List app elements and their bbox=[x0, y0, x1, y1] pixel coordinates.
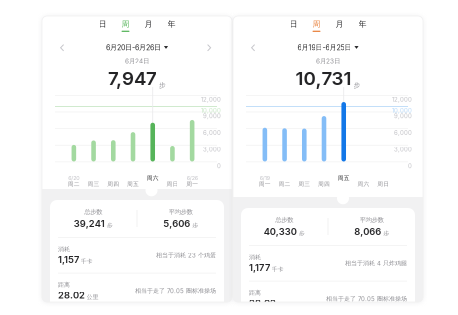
staticText: 周一 bbox=[186, 180, 198, 188]
staticText: 28.02 bbox=[249, 297, 276, 309]
staticText: 千卡 bbox=[80, 258, 92, 265]
staticText: 6,000 bbox=[394, 129, 412, 136]
staticText: 3,000 bbox=[394, 146, 412, 153]
staticText: 日 bbox=[98, 19, 106, 29]
staticText: 相当于消耗 23 个鸡蛋 bbox=[156, 251, 216, 259]
staticText: 距离 bbox=[249, 289, 261, 296]
button[interactable]: 上一周 bbox=[251, 44, 256, 53]
staticText: 平均步数 bbox=[169, 208, 193, 216]
staticText: 6/19 bbox=[260, 175, 270, 181]
staticText: 6月20日-6月26日 bbox=[106, 43, 161, 52]
staticText: 12,000 bbox=[392, 96, 412, 103]
staticText: 40,330 bbox=[264, 226, 297, 237]
staticText: 1,177 bbox=[249, 262, 270, 273]
staticText: 周六 bbox=[357, 180, 369, 188]
staticText: 0 bbox=[217, 162, 221, 170]
staticText: 39,241 bbox=[74, 218, 105, 229]
staticText: 消耗 bbox=[249, 253, 261, 261]
staticText: 6/26 bbox=[187, 175, 198, 181]
staticText: 年 bbox=[358, 19, 366, 29]
staticText: 周 bbox=[312, 19, 320, 29]
staticText: 周五 bbox=[127, 180, 139, 188]
staticText: 9,000 bbox=[203, 112, 221, 120]
staticText: 周 bbox=[121, 19, 129, 29]
staticText: 步 bbox=[192, 222, 198, 229]
staticText: 6月24日 bbox=[125, 57, 149, 65]
button[interactable]: 周 bbox=[305, 19, 328, 32]
staticText: 周日 bbox=[166, 180, 178, 188]
staticText: 日 bbox=[289, 19, 297, 29]
staticText: 周一 bbox=[259, 180, 271, 188]
staticText: 周二 bbox=[279, 180, 291, 188]
staticText: 1,157 bbox=[58, 254, 79, 265]
staticText: 步 bbox=[383, 230, 389, 237]
staticText: 周日 bbox=[377, 180, 389, 188]
button[interactable]: 年 bbox=[160, 19, 183, 32]
staticText: 6月19日-6月25日 bbox=[297, 43, 351, 52]
staticText: 周三 bbox=[88, 180, 100, 188]
staticText: 消耗 bbox=[58, 245, 70, 253]
staticText: 10,000 bbox=[201, 107, 221, 114]
staticText: 5,606 bbox=[163, 218, 190, 229]
staticText: 月 bbox=[335, 19, 343, 29]
staticText: 9,000 bbox=[394, 112, 412, 120]
staticText: 平均步数 bbox=[360, 216, 384, 224]
staticText: 周四 bbox=[107, 180, 119, 188]
staticText: 周五 bbox=[338, 174, 350, 182]
button[interactable]: 周 bbox=[114, 19, 137, 32]
staticText: 6/20 bbox=[68, 175, 79, 181]
staticText: 0 bbox=[408, 162, 412, 170]
button[interactable]: 日 bbox=[91, 19, 114, 32]
staticText: 7,947 bbox=[108, 67, 157, 90]
staticText: 总步数 bbox=[84, 208, 102, 216]
staticText: 相当于走了 70.05 圈标准操场 bbox=[135, 287, 216, 295]
staticText: 10,000 bbox=[392, 107, 412, 114]
staticText: 年 bbox=[167, 19, 175, 29]
button[interactable]: 年 bbox=[351, 19, 374, 32]
staticText: 月 bbox=[144, 19, 152, 29]
staticText: 28.02 bbox=[58, 289, 85, 301]
button[interactable]: 月 bbox=[137, 19, 160, 32]
staticText: 公里 bbox=[277, 301, 289, 309]
staticText: 距离 bbox=[58, 281, 70, 288]
button[interactable]: 月 bbox=[328, 19, 351, 32]
staticText: 6月23日 bbox=[316, 57, 340, 65]
staticText: 千卡 bbox=[271, 266, 283, 273]
staticText: 周六 bbox=[147, 174, 159, 182]
staticText: 周三 bbox=[298, 180, 310, 188]
staticText: 周二 bbox=[68, 180, 80, 188]
staticText: 步 bbox=[159, 81, 166, 90]
staticText: 步 bbox=[107, 222, 113, 229]
staticText: 8,066 bbox=[354, 226, 381, 237]
staticText: 周四 bbox=[318, 180, 330, 188]
staticText: 总步数 bbox=[275, 216, 293, 224]
staticText: 步 bbox=[353, 81, 360, 90]
staticText: 公里 bbox=[86, 293, 98, 301]
staticText: 6,000 bbox=[203, 129, 221, 136]
staticText: 12,000 bbox=[201, 96, 221, 103]
staticText: 10,731 bbox=[295, 67, 351, 90]
staticText: 相当于消耗 4 只炸鸡腿 bbox=[345, 259, 407, 267]
staticText: 相当于走了 70.05 圈标准操场 bbox=[326, 295, 407, 303]
staticText: 步 bbox=[299, 230, 305, 237]
button[interactable]: 下一周 bbox=[207, 44, 212, 53]
button[interactable]: 上一周 bbox=[60, 44, 65, 53]
staticText: 3,000 bbox=[203, 146, 221, 153]
button[interactable]: 日 bbox=[282, 19, 305, 32]
